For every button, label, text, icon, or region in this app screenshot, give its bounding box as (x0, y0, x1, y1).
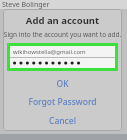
staticText: OK (56, 78, 69, 90)
staticText: Steve Bolinger (2, 0, 50, 9)
staticText: Forgot Password (28, 96, 97, 108)
button[interactable] (10, 58, 115, 68)
staticText: wikihowstella@gmail.com (13, 48, 86, 56)
button[interactable]: wikihowstella@gmail.com (10, 46, 115, 57)
staticText: Cancel (49, 115, 76, 127)
button[interactable]: Forgot Password (3, 92, 122, 111)
button[interactable]: Cancel (3, 111, 122, 130)
staticText: Sign into the account you want to add. (3, 30, 122, 39)
staticText: Add an account (3, 14, 122, 27)
button[interactable]: OK (3, 76, 122, 92)
